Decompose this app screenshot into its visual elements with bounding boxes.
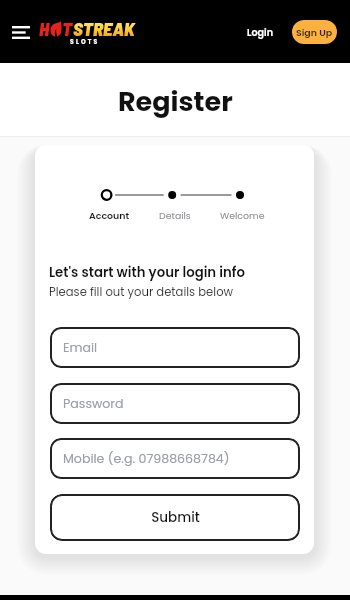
staticText: T	[62, 17, 73, 40]
button[interactable]: Mobile (e.g. 07988668784)	[50, 438, 300, 479]
staticText: STREAK	[73, 17, 135, 40]
staticText: Mobile (e.g. 07988668784)	[63, 450, 230, 468]
staticText: Details	[159, 209, 191, 222]
staticText: Let's start with your login info	[49, 263, 245, 282]
button[interactable]: Login	[240, 20, 280, 44]
staticText: Submit	[151, 508, 200, 527]
button[interactable]: Sign Up	[292, 20, 337, 44]
staticText: Email	[63, 339, 98, 357]
staticText: Password	[63, 395, 124, 413]
button[interactable]: Menu	[6, 17, 36, 47]
button[interactable]: Password	[50, 383, 300, 424]
staticText: Register	[118, 83, 233, 121]
staticText: H	[39, 17, 50, 40]
button[interactable]: Email	[50, 327, 300, 368]
staticText: SLOTS	[70, 38, 100, 46]
staticText: Login	[247, 26, 274, 39]
button[interactable]: Submit	[50, 494, 300, 541]
staticText: Account	[89, 209, 130, 222]
staticText: Welcome	[220, 209, 265, 222]
staticText: Sign Up	[296, 26, 333, 39]
staticText: Please fill out your details below	[49, 284, 234, 300]
